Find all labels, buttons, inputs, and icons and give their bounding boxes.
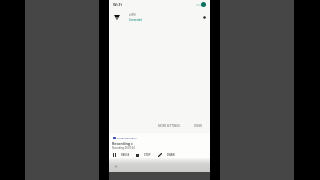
staticText: Screen Recorder • xyxy=(117,136,138,139)
staticText: DRAW xyxy=(167,153,175,157)
button[interactable]: Back xyxy=(111,161,120,171)
staticText: Connected xyxy=(129,18,142,21)
button[interactable]: PAUSE xyxy=(113,153,130,157)
staticText: DONE xyxy=(194,124,202,128)
staticText: eSPN xyxy=(129,13,136,17)
staticText: STOP xyxy=(144,153,151,157)
button[interactable]: MORE SETTINGS xyxy=(156,121,182,131)
button[interactable]: Wi-Fi xyxy=(111,0,127,9)
staticText: Recording c xyxy=(112,141,133,146)
staticText: Recording 00:01:04 xyxy=(112,146,135,149)
button[interactable]: Wi-Fi toggle xyxy=(193,0,210,9)
staticText: PAUSE xyxy=(121,153,130,157)
staticText: MORE SETTINGS xyxy=(158,124,180,128)
button[interactable]: DRAW xyxy=(158,153,175,157)
button[interactable]: STOP xyxy=(136,153,151,157)
button[interactable]: DONE xyxy=(192,121,204,131)
button[interactable]: eSPN xyxy=(109,11,210,23)
staticText: Wi-Fi xyxy=(113,2,122,7)
